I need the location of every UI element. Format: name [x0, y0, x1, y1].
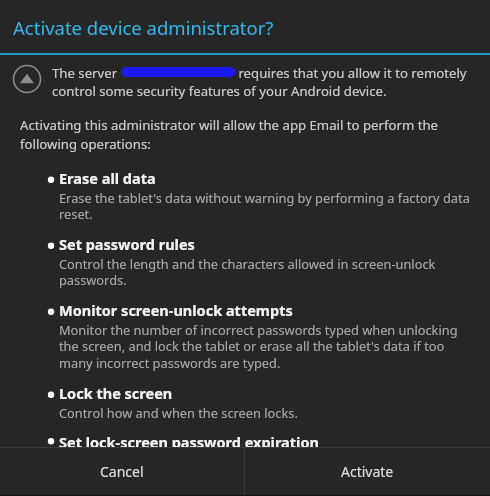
staticText: Erase all data	[59, 168, 156, 188]
staticText: Activate device administrator?	[13, 15, 274, 40]
staticText: Monitor screen-unlock attempts	[59, 300, 293, 320]
staticText: Control how and when the screen locks.	[59, 404, 298, 421]
staticText: Cancel	[100, 462, 144, 481]
staticText: Monitor the number of incorrect password…	[59, 321, 470, 372]
staticText: Control the length and the characters al…	[59, 255, 470, 289]
button[interactable]: Activate	[245, 448, 490, 495]
other: Administrator icon	[12, 64, 42, 94]
staticText: Set lock-screen password expiration	[59, 432, 319, 447]
staticText: Erase the tablet's data without warning …	[59, 189, 470, 223]
staticText: Activating this administrator will allow…	[20, 116, 468, 152]
button[interactable]: Cancel	[0, 448, 244, 495]
staticText: The server	[52, 64, 121, 82]
staticText: Lock the screen	[59, 383, 173, 403]
staticText: Set password rules	[59, 234, 195, 254]
staticText: Activate	[341, 462, 394, 481]
staticText: requires that you allow it to remotely	[235, 64, 467, 82]
staticText: control some security features of your A…	[52, 82, 387, 100]
